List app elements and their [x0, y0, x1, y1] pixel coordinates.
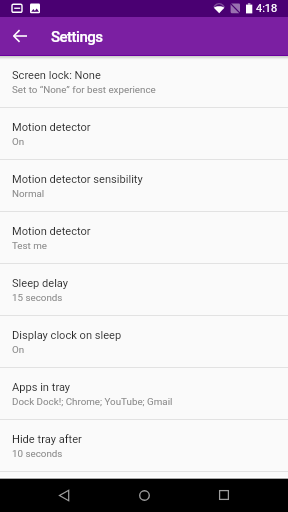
staticText: 4:18 — [256, 2, 278, 15]
staticText: Normal — [12, 188, 45, 199]
staticText: Hide tray after — [12, 433, 82, 446]
button[interactable]: Display clock on sleep — [0, 316, 288, 367]
staticText: 10 seconds — [12, 448, 63, 459]
button[interactable]: Sleep delay — [0, 264, 288, 315]
button[interactable]: Recent apps — [184, 479, 288, 512]
button[interactable]: Hide tray after — [0, 420, 288, 471]
button[interactable]: Motion detector sensibility — [0, 160, 288, 211]
staticText: Apps in tray — [12, 381, 71, 394]
staticText: Dock Dock!; Chrome; YouTube; Gmail — [12, 396, 173, 407]
staticText: On — [12, 136, 25, 147]
staticText: Display clock on sleep — [12, 329, 122, 342]
staticText: Settings — [51, 28, 103, 46]
staticText: Motion detector — [12, 121, 91, 134]
button[interactable]: Navigate up — [0, 17, 39, 55]
staticText: On — [12, 344, 25, 355]
button[interactable]: Back — [0, 479, 104, 512]
button[interactable]: Motion detector — [0, 212, 288, 263]
staticText: Test me — [12, 240, 48, 251]
button[interactable]: Home — [104, 479, 184, 512]
button[interactable]: Screen lock: None — [0, 56, 288, 107]
staticText: Screen lock: None — [12, 69, 101, 82]
button[interactable]: Motion detector — [0, 108, 288, 159]
staticText: Motion detector sensibility — [12, 173, 143, 186]
button[interactable]: Apps in tray — [0, 368, 288, 419]
staticText: Set to “None” for best experience — [12, 84, 156, 95]
staticText: Sleep delay — [12, 277, 69, 290]
staticText: 15 seconds — [12, 292, 63, 303]
staticText: Motion detector — [12, 225, 91, 238]
